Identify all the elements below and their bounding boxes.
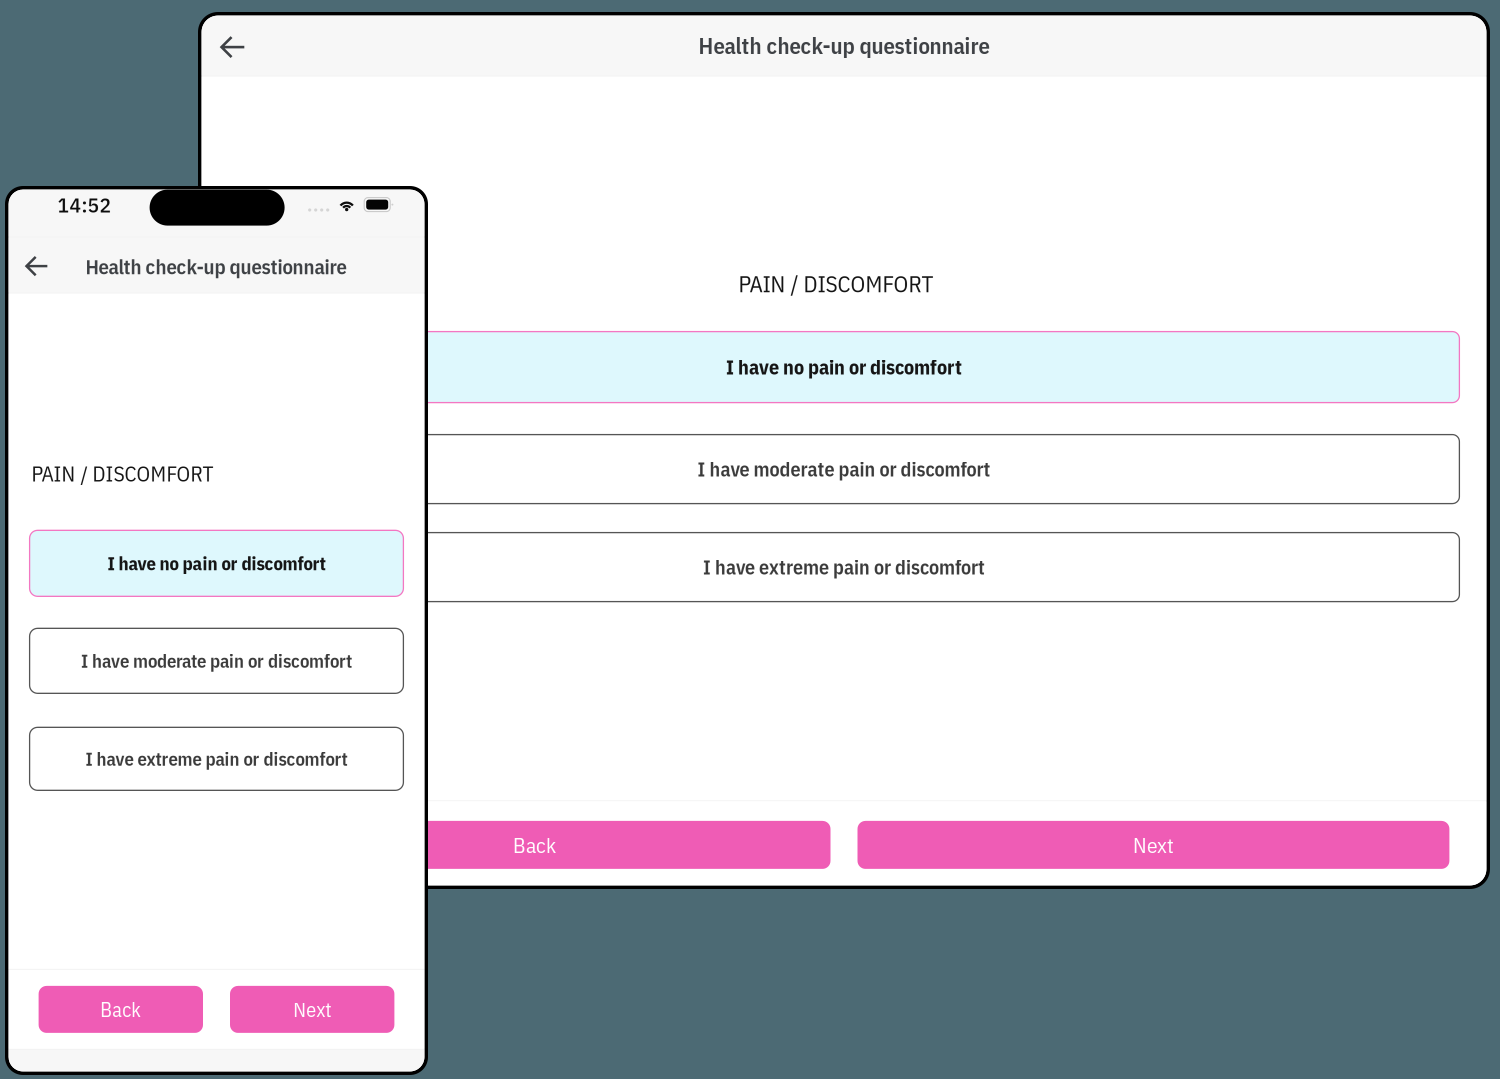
button[interactable]: Next — [230, 986, 394, 1033]
button[interactable]: Back — [39, 986, 203, 1033]
staticText: I have extreme pain or discomfort — [85, 747, 347, 771]
staticText: I have extreme pain or discomfort — [703, 554, 985, 580]
staticText: Next — [293, 996, 331, 1022]
staticText: I have moderate pain or discomfort — [81, 649, 352, 673]
button[interactable]: Next — [857, 821, 1449, 869]
button[interactable]: I have extreme pain or discomfort — [229, 533, 1459, 602]
button[interactable]: I have moderate pain or discomfort — [30, 628, 403, 693]
staticText: Health check-up questionnaire — [698, 31, 989, 60]
staticText: 14:52 — [58, 191, 112, 218]
staticText: PAIN / DISCOMFORT — [738, 269, 933, 299]
staticText: I have no pain or discomfort — [107, 551, 325, 575]
button[interactable]: Back — [11, 241, 63, 291]
staticText: Back — [513, 831, 556, 859]
button[interactable]: Back — [204, 20, 262, 74]
staticText: I have moderate pain or discomfort — [697, 456, 990, 482]
button[interactable]: Back — [239, 821, 830, 869]
staticText: PAIN / DISCOMFORT — [32, 460, 214, 487]
staticText: Back — [100, 996, 141, 1022]
button[interactable]: I have no pain or discomfort — [229, 332, 1459, 403]
button[interactable]: I have extreme pain or discomfort — [30, 727, 403, 790]
button[interactable]: I have moderate pain or discomfort — [229, 435, 1459, 504]
staticText: I have no pain or discomfort — [726, 354, 962, 380]
button[interactable]: I have no pain or discomfort — [30, 530, 403, 596]
staticText: Health check-up questionnaire — [86, 253, 347, 280]
staticText: Next — [1133, 831, 1174, 859]
